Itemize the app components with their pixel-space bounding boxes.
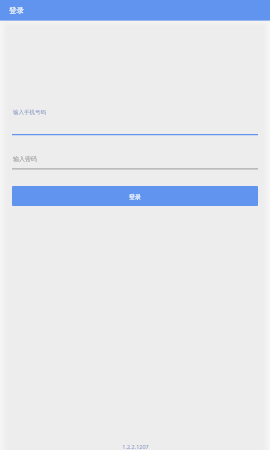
staticText: 登录 xyxy=(9,6,24,15)
staticText: 登录 xyxy=(129,193,141,201)
staticText: 输入手机号码 xyxy=(13,109,46,116)
staticText: 1.2.2.1207 xyxy=(122,443,149,450)
button[interactable]: 输入密码 xyxy=(12,152,258,172)
staticText: 输入密码 xyxy=(13,155,37,163)
button[interactable]: 登录 xyxy=(12,186,258,206)
button[interactable]: 输入手机号码 xyxy=(12,104,258,136)
